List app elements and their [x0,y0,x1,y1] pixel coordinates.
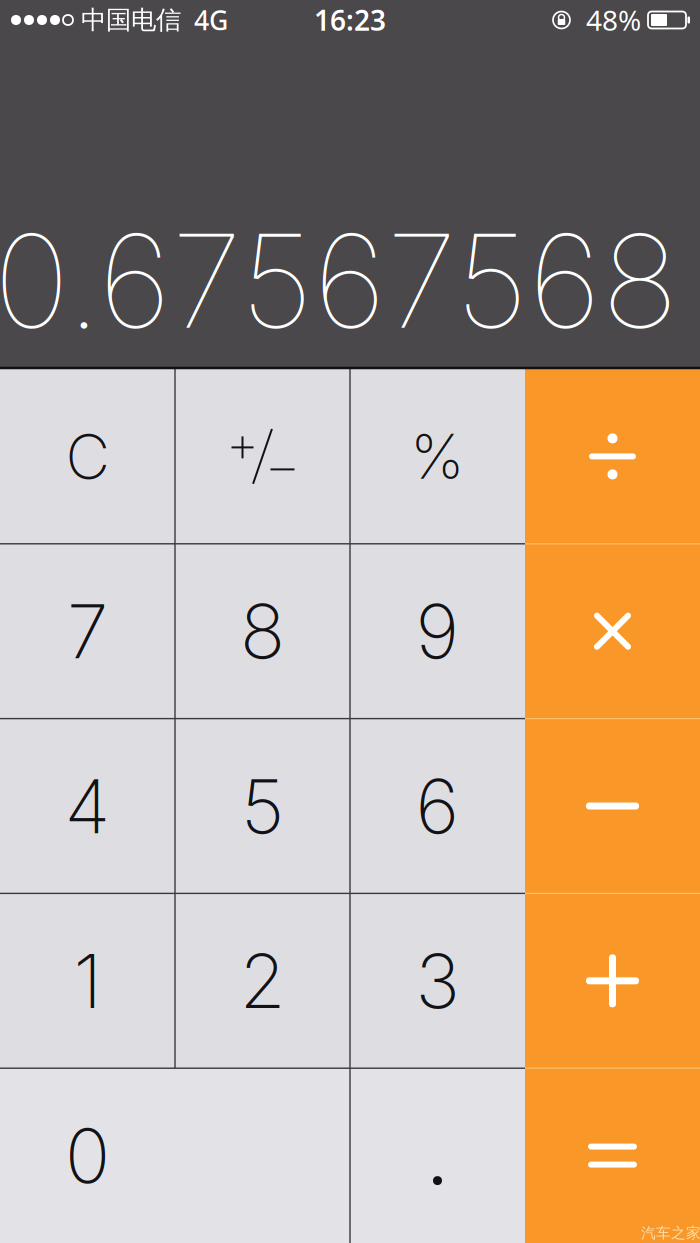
button[interactable]: Equals [525,1068,700,1243]
button[interactable]: Divide [525,369,700,544]
staticText: 8 [240,586,285,676]
button[interactable]: % [350,369,525,544]
staticText: 7 [67,586,108,676]
button[interactable]: Minus [525,719,700,893]
button[interactable]: 6 [350,719,525,893]
staticText: 6 [415,761,459,851]
staticText: 0 [65,1110,110,1201]
button[interactable]: 7 [0,544,175,719]
button[interactable]: 9 [350,544,525,719]
button[interactable]: 4 [0,719,175,893]
button[interactable]: 2 [175,893,350,1068]
staticText: 5 [241,761,284,851]
staticText: % [410,419,465,493]
staticText: C [65,419,109,493]
staticText: 48% [586,1,641,39]
staticText: 4 [64,761,110,851]
staticText: 9 [415,586,459,676]
button[interactable]: 1 [0,893,175,1068]
button[interactable]: C [0,369,175,544]
staticText: 1 [73,936,101,1026]
button[interactable]: Plus minus [175,369,350,544]
staticText: 中国电信 [81,4,181,35]
button[interactable]: Plus [525,893,700,1068]
staticText: 2 [239,936,285,1026]
staticText: 4G [194,2,228,38]
staticText: 汽车之家 [641,1224,700,1242]
button[interactable]: 3 [350,893,525,1068]
button[interactable]: 8 [175,544,350,719]
staticText: 16:23 [314,1,386,39]
button[interactable]: Multiply [525,544,700,719]
staticText: 0.67567568 [0,203,678,359]
button[interactable]: 0 [0,1068,350,1243]
button[interactable]: Decimal point [350,1068,525,1243]
staticText: 3 [415,936,459,1026]
button[interactable]: 5 [175,719,350,893]
